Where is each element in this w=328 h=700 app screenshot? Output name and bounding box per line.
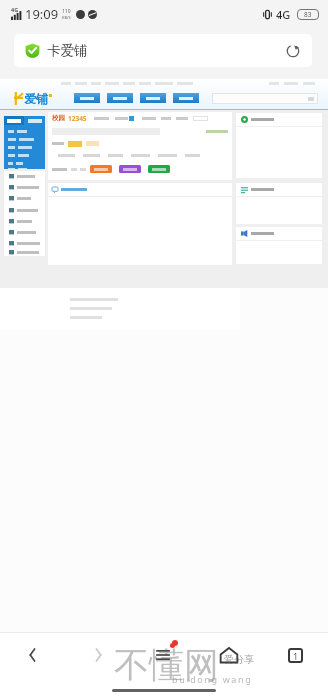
button[interactable]: Tabs (262, 633, 328, 677)
staticText: 110 (62, 8, 71, 15)
staticText: 4G (276, 7, 291, 21)
button[interactable] (8, 144, 45, 150)
button[interactable] (148, 165, 170, 173)
staticText: 19:09 (25, 5, 59, 23)
staticText: 83 (304, 10, 312, 19)
button[interactable] (90, 165, 112, 173)
button[interactable] (9, 193, 45, 204)
button[interactable] (212, 93, 318, 104)
button[interactable] (107, 93, 133, 103)
button[interactable] (24, 116, 45, 125)
button[interactable] (8, 128, 45, 134)
staticText: 不懂网 (114, 643, 219, 687)
staticText: 校园 (52, 114, 65, 122)
staticText: 12345 (68, 114, 87, 123)
button[interactable] (119, 165, 141, 173)
button[interactable] (241, 113, 322, 126)
button[interactable]: Back (0, 633, 65, 677)
button[interactable] (8, 136, 45, 142)
button[interactable] (9, 238, 45, 249)
staticText: 4G (11, 6, 19, 13)
button[interactable] (8, 168, 45, 169)
staticText: 爱分享 (224, 653, 254, 666)
button[interactable] (241, 183, 322, 196)
button[interactable] (74, 93, 100, 103)
button[interactable] (173, 93, 199, 103)
staticText: 卡爱铺 (47, 42, 88, 59)
button[interactable] (9, 171, 45, 182)
button[interactable]: Forward (65, 633, 130, 677)
staticText: + (277, 14, 281, 22)
button[interactable] (241, 227, 322, 240)
staticText: 爱铺 (24, 91, 48, 106)
staticText: 1 (293, 650, 299, 662)
button[interactable] (9, 249, 45, 256)
button[interactable] (4, 116, 24, 125)
button[interactable] (140, 93, 166, 103)
button[interactable]: Refresh page (282, 40, 304, 62)
button[interactable]: Home (196, 633, 262, 677)
staticText: KB/S (62, 15, 71, 20)
button[interactable]: Menu (130, 633, 196, 677)
button[interactable] (9, 216, 45, 227)
button[interactable]: 卡爱铺 (14, 34, 312, 67)
button[interactable] (9, 227, 45, 238)
button[interactable] (9, 182, 45, 193)
staticText: bu dong wang (172, 673, 253, 685)
button[interactable] (9, 205, 45, 216)
button[interactable] (8, 152, 45, 158)
button[interactable] (8, 160, 45, 166)
